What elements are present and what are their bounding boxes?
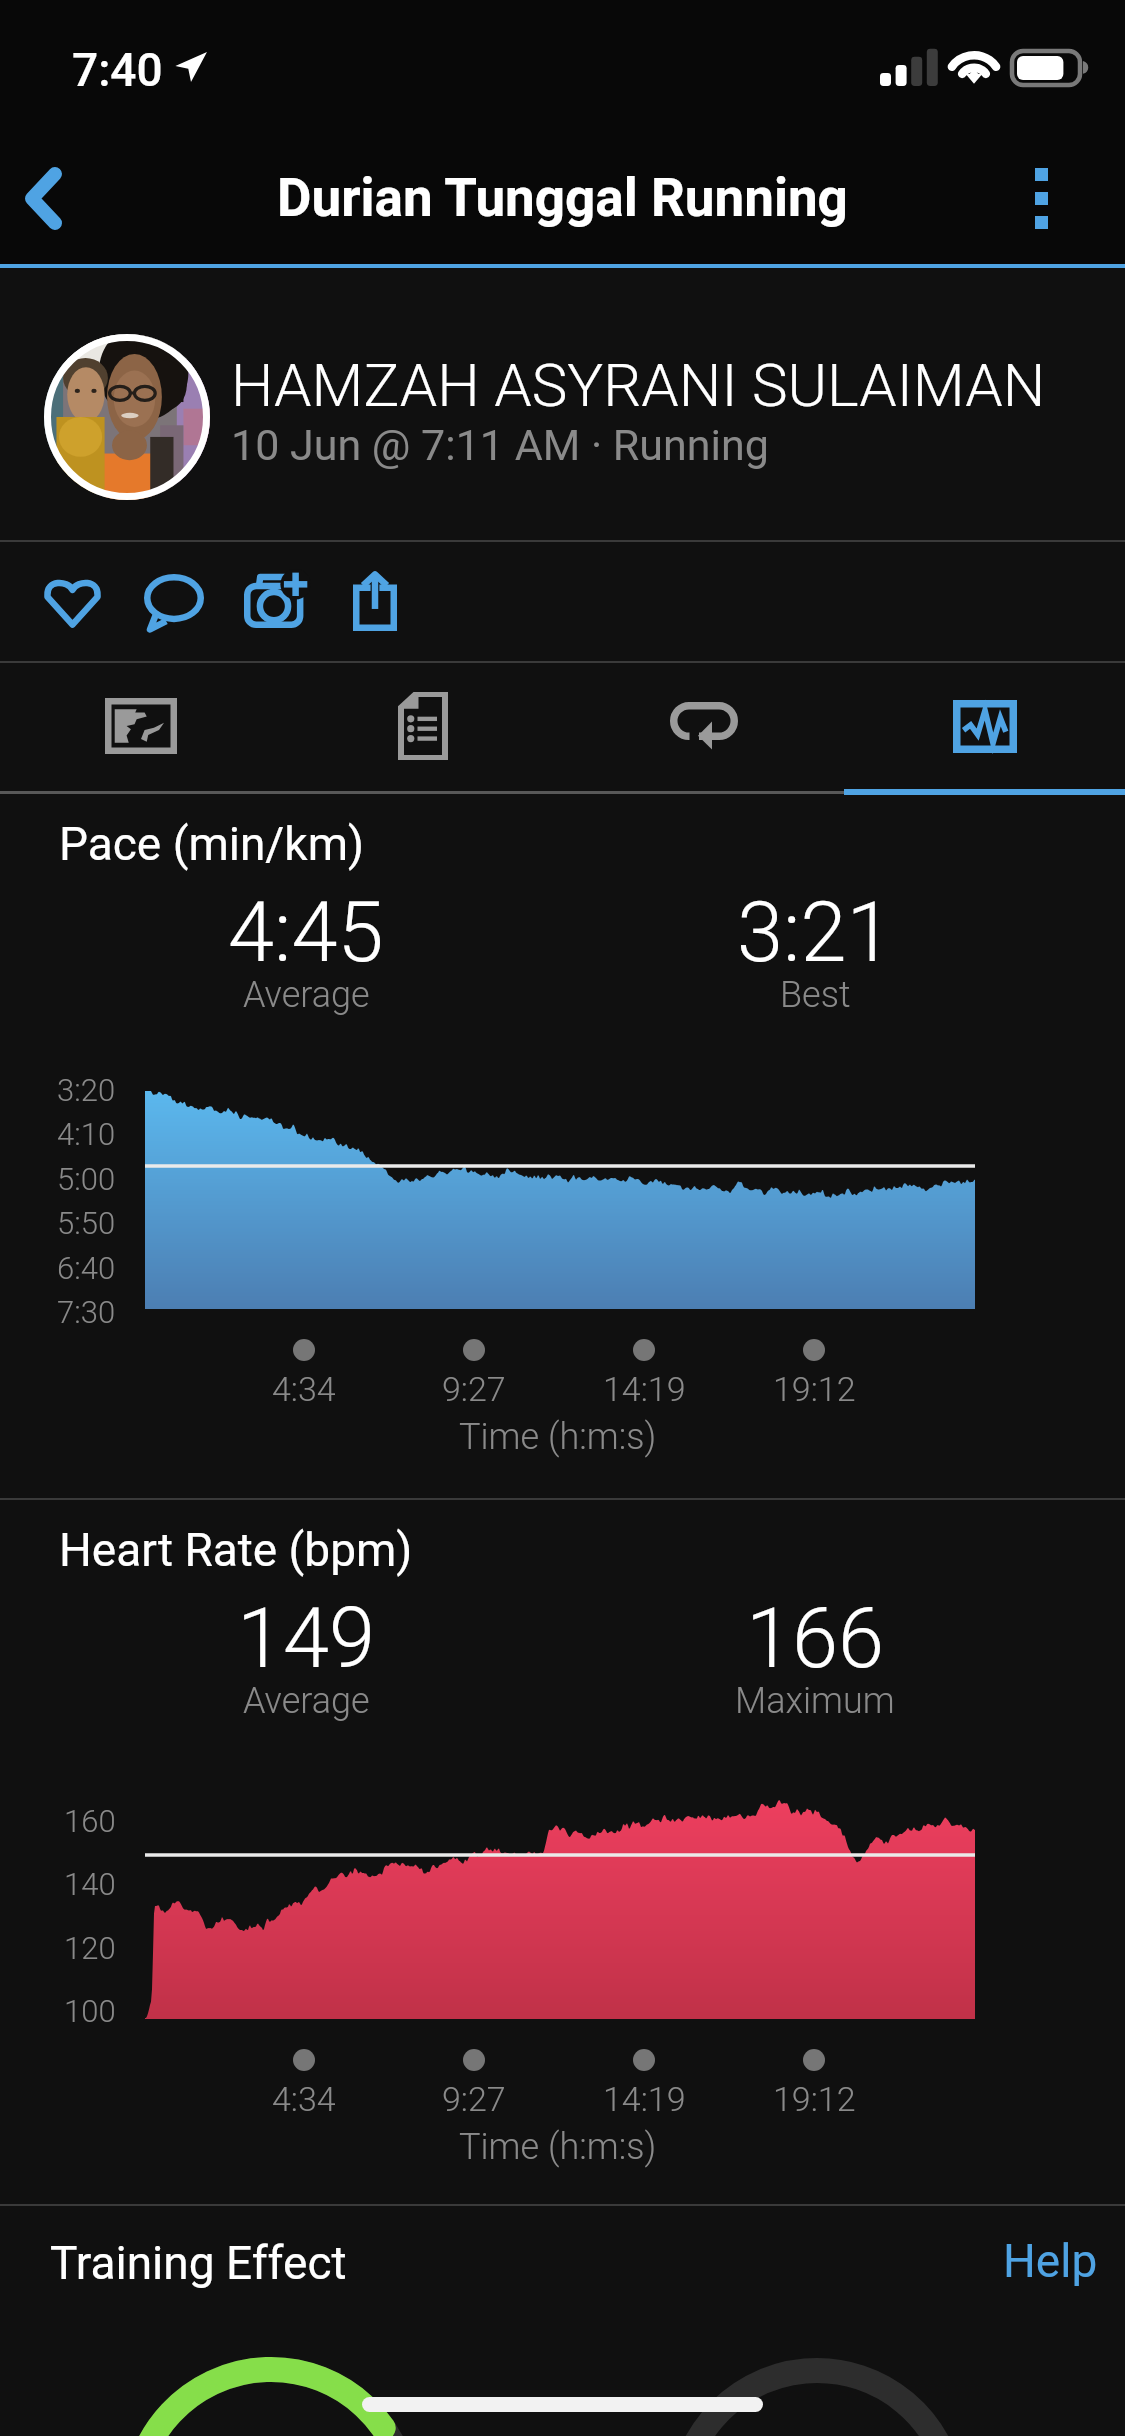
staticText: Training Effect	[50, 2236, 347, 2290]
staticText: 19:12	[773, 2079, 856, 2119]
button[interactable]: Details	[282, 663, 563, 789]
staticText: 100	[64, 1993, 116, 2029]
button[interactable]: Add photo	[224, 542, 324, 662]
staticText: 7:30	[57, 1294, 116, 1330]
staticText: Help	[1003, 2234, 1098, 2288]
staticText: 6:40	[57, 1250, 116, 1286]
staticText: Heart Rate (bpm)	[59, 1523, 413, 1577]
button[interactable]: Help	[985, 2228, 1115, 2294]
staticText: 140	[64, 1866, 116, 1902]
staticText: 14:19	[603, 1369, 686, 1409]
staticText: Pace (min/km)	[59, 817, 364, 871]
staticText: 4:10	[57, 1116, 116, 1152]
staticText: Average	[243, 974, 370, 1016]
staticText: 3:20	[57, 1072, 116, 1108]
staticText: HAMZAH ASYRANI SULAIMAN	[231, 350, 1046, 420]
staticText: 19:12	[773, 1369, 856, 1409]
staticText: 4:34	[272, 2079, 336, 2119]
button[interactable]: More options	[1013, 132, 1125, 264]
staticText: Durian Tunggal Running	[277, 167, 848, 229]
staticText: 5:50	[57, 1205, 116, 1241]
staticText: 149	[237, 1590, 376, 1687]
staticText: 120	[64, 1930, 116, 1966]
button[interactable]: Laps	[563, 663, 844, 789]
staticText: 4:45	[228, 884, 384, 981]
staticText: 5:00	[57, 1161, 116, 1197]
button[interactable]: Comment	[124, 542, 224, 662]
staticText: Time (h:m:s)	[459, 2126, 657, 2168]
staticText: 10 Jun @ 7:11 AM · Running	[231, 420, 769, 470]
staticText: 9:27	[442, 2079, 506, 2119]
staticText: Time (h:m:s)	[459, 1416, 657, 1458]
staticText: 160	[64, 1803, 116, 1839]
button[interactable]: Like	[22, 542, 122, 662]
button[interactable]: Map	[0, 663, 282, 789]
staticText: 14:19	[603, 2079, 686, 2119]
staticText: 7:40	[72, 43, 163, 97]
staticText: Maximum	[735, 1680, 895, 1722]
staticText: 4:34	[272, 1369, 336, 1409]
staticText: 3:21	[737, 884, 893, 981]
button[interactable]: Share	[325, 542, 425, 662]
staticText: Best	[780, 974, 851, 1016]
staticText: 166	[746, 1590, 885, 1687]
button[interactable]: Charts	[844, 663, 1125, 789]
staticText: 9:27	[442, 1369, 506, 1409]
staticText: Average	[243, 1680, 370, 1722]
button[interactable]: Back	[0, 132, 112, 264]
